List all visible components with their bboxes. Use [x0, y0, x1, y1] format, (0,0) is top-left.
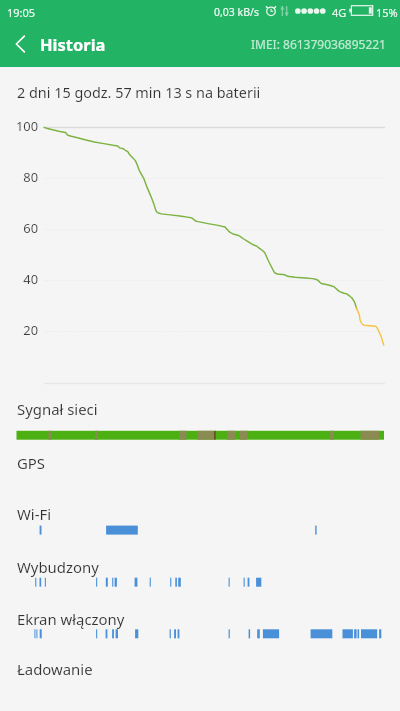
staticText: 60: [0, 219, 38, 237]
staticText: 40: [0, 270, 38, 288]
staticText: Ekran włączony: [17, 609, 125, 629]
staticText: IMEI: 861379036895221: [251, 36, 386, 52]
staticText: Sygnał sieci: [17, 399, 98, 419]
button[interactable]: Back: [0, 21, 40, 67]
staticText: Ładowanie: [17, 659, 93, 679]
staticText: Wybudzony: [17, 557, 99, 577]
staticText: GPS: [17, 453, 46, 473]
staticText: 15%: [376, 5, 398, 20]
staticText: 19:05: [7, 5, 36, 20]
staticText: 4G: [332, 5, 347, 20]
staticText: 80: [0, 168, 38, 186]
staticText: Historia: [40, 33, 106, 55]
staticText: 100: [0, 117, 38, 135]
staticText: 20: [0, 321, 38, 339]
staticText: Wi-Fi: [17, 504, 52, 524]
staticText: 0,03 kB/s: [214, 5, 259, 19]
staticText: 2 dni 15 godz. 57 min 13 s na baterii: [17, 83, 261, 103]
